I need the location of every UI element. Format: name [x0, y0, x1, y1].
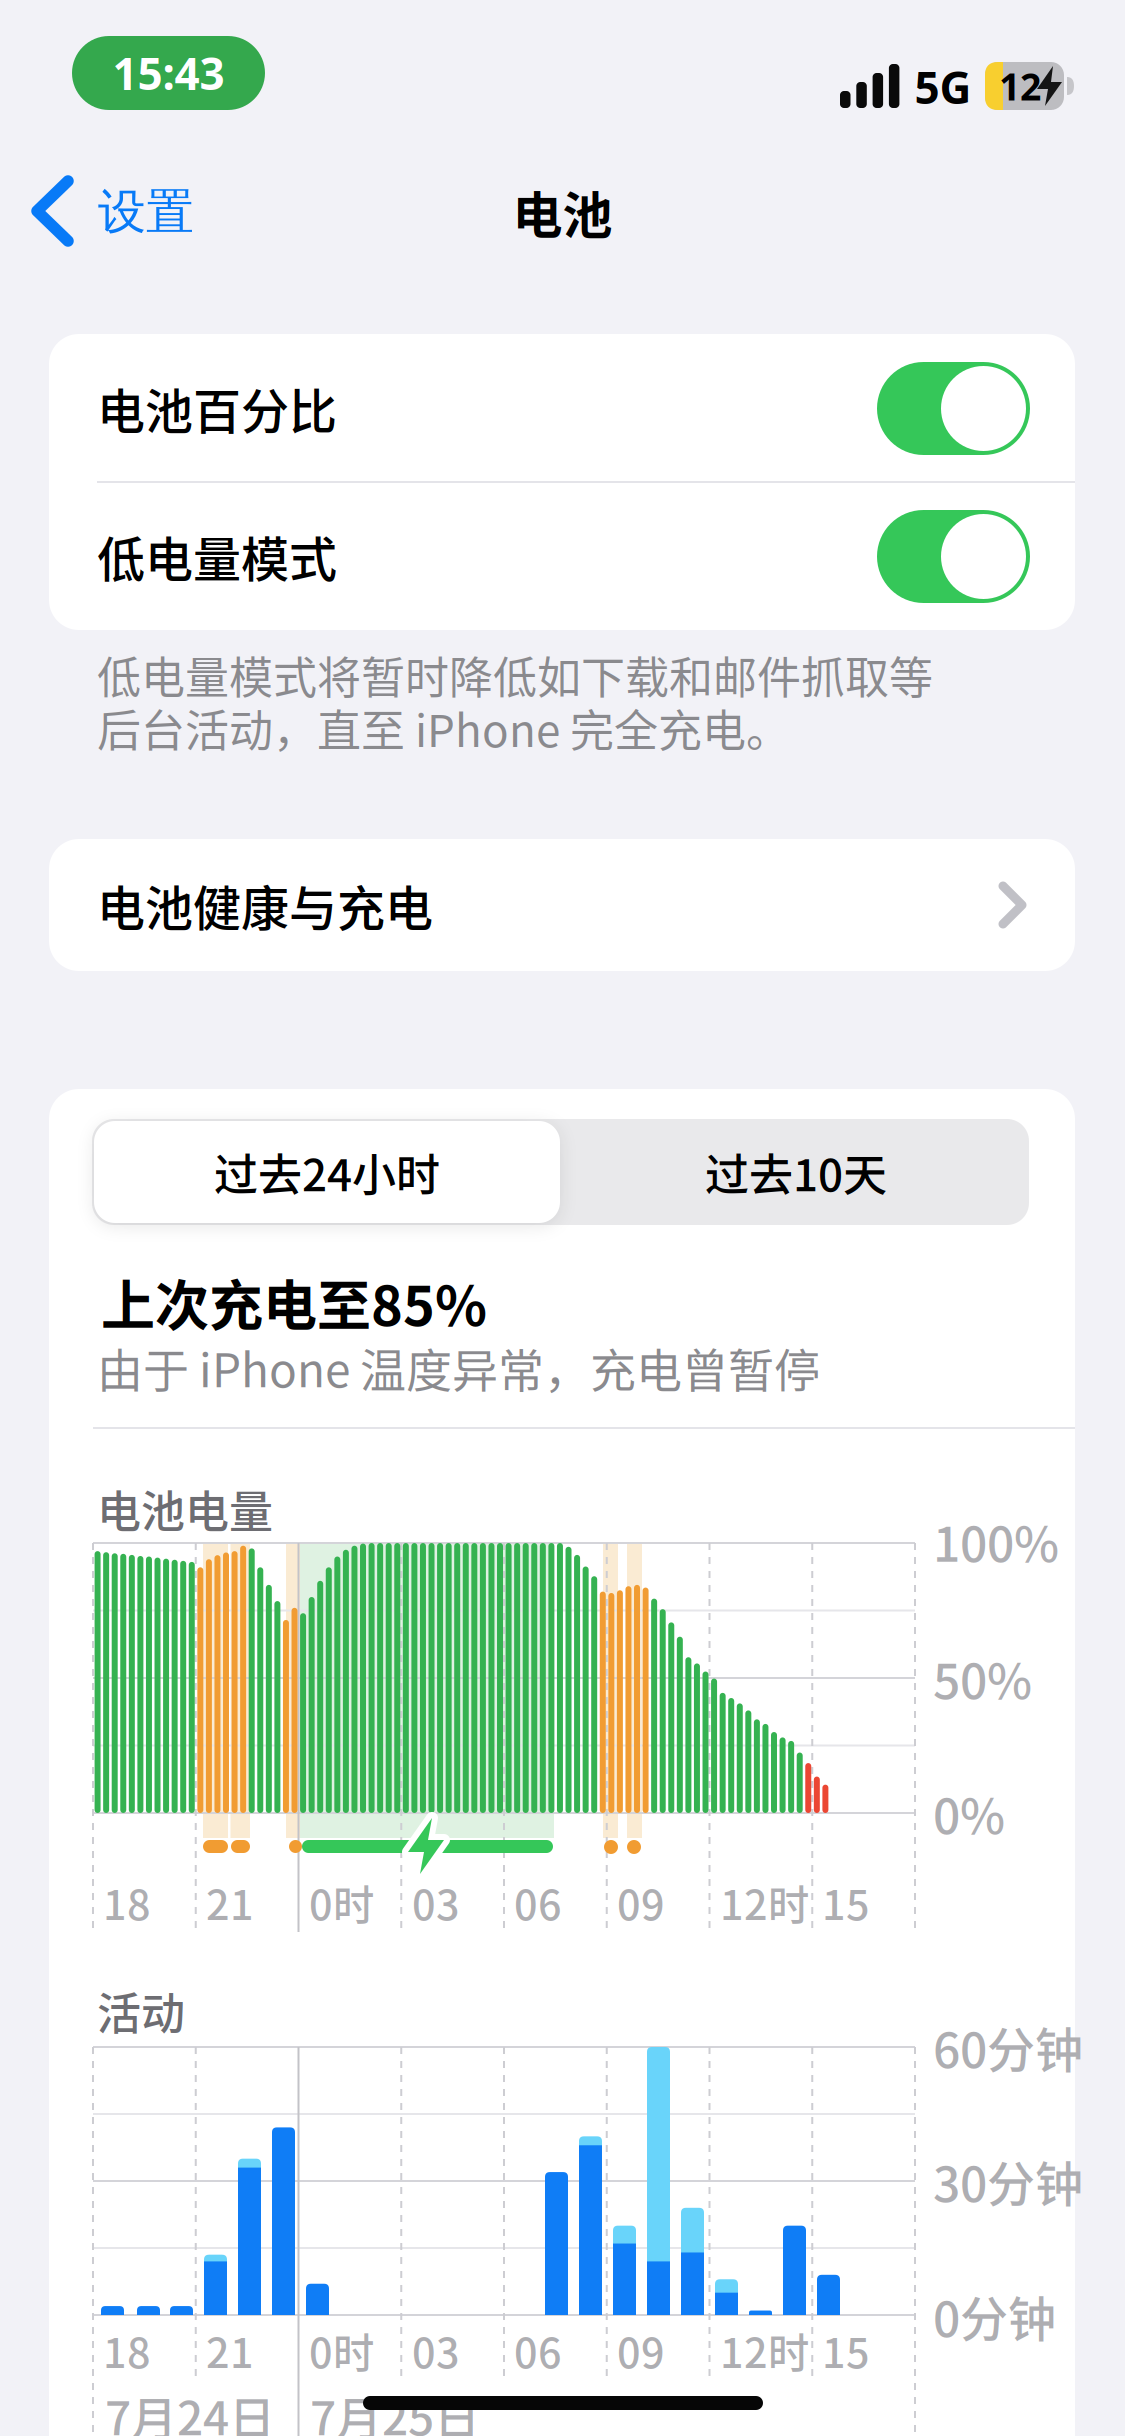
staticText: 12时 — [720, 1872, 809, 1932]
staticText: 电池 — [512, 176, 612, 248]
button[interactable]: 低电量模式 — [877, 510, 1030, 603]
staticText: 18 — [103, 2320, 151, 2380]
staticText: 30分钟 — [933, 2146, 1083, 2215]
staticText: 60分钟 — [933, 2012, 1083, 2081]
staticText: 电池健康与充电 — [97, 870, 433, 940]
staticText: 0分钟 — [933, 2281, 1056, 2350]
staticText: 5G — [914, 58, 971, 116]
staticText: 活动 — [97, 1979, 185, 2043]
staticText: 0时 — [309, 1872, 374, 1932]
staticText: 0时 — [309, 2320, 374, 2380]
button[interactable]: 过去10天 — [563, 1121, 1029, 1223]
staticText: 电池电量 — [97, 1477, 273, 1541]
staticText: 过去24小时 — [214, 1140, 440, 1204]
button[interactable]: 返回通话 — [72, 36, 265, 110]
staticText: 06 — [514, 2320, 562, 2380]
staticText: 电池百分比 — [97, 373, 337, 443]
staticText: 50% — [933, 1643, 1032, 1712]
staticText: 03 — [412, 1872, 460, 1932]
staticText: 过去10天 — [705, 1140, 887, 1204]
staticText: 09 — [617, 2320, 665, 2380]
staticText: 设置 — [98, 182, 194, 241]
staticText: 15:43 — [112, 44, 224, 102]
staticText: 21 — [206, 1872, 254, 1932]
button[interactable]: 过去24小时 — [94, 1121, 560, 1223]
staticText: 7月24日 — [105, 2382, 275, 2436]
staticText: 15 — [822, 2320, 870, 2380]
staticText: 12 — [999, 61, 1041, 111]
staticText: 7月25日 — [310, 2382, 480, 2436]
staticText: 03 — [412, 2320, 460, 2380]
staticText: 100% — [933, 1506, 1059, 1575]
staticText: 上次充电至85% — [101, 1263, 487, 1341]
staticText: 低电量模式将暂时降低如下载和邮件抓取等 — [97, 643, 933, 707]
staticText: 09 — [617, 1872, 665, 1932]
staticText: 15 — [822, 1872, 870, 1932]
staticText: 21 — [206, 2320, 254, 2380]
staticText: 由于 iPhone 温度异常，充电曾暂停 — [97, 1334, 820, 1401]
button[interactable]: 电池健康与充电 — [49, 839, 1075, 971]
staticText: 后台活动，直至 iPhone 完全充电。 — [97, 696, 790, 760]
staticText: 18 — [103, 1872, 151, 1932]
staticText: 06 — [514, 1872, 562, 1932]
staticText: 12时 — [720, 2320, 809, 2380]
button[interactable]: 返回设置 — [28, 178, 194, 246]
staticText: 低电量模式 — [97, 521, 337, 591]
button[interactable]: 电池百分比 — [877, 362, 1030, 455]
staticText: 0% — [933, 1778, 1005, 1847]
